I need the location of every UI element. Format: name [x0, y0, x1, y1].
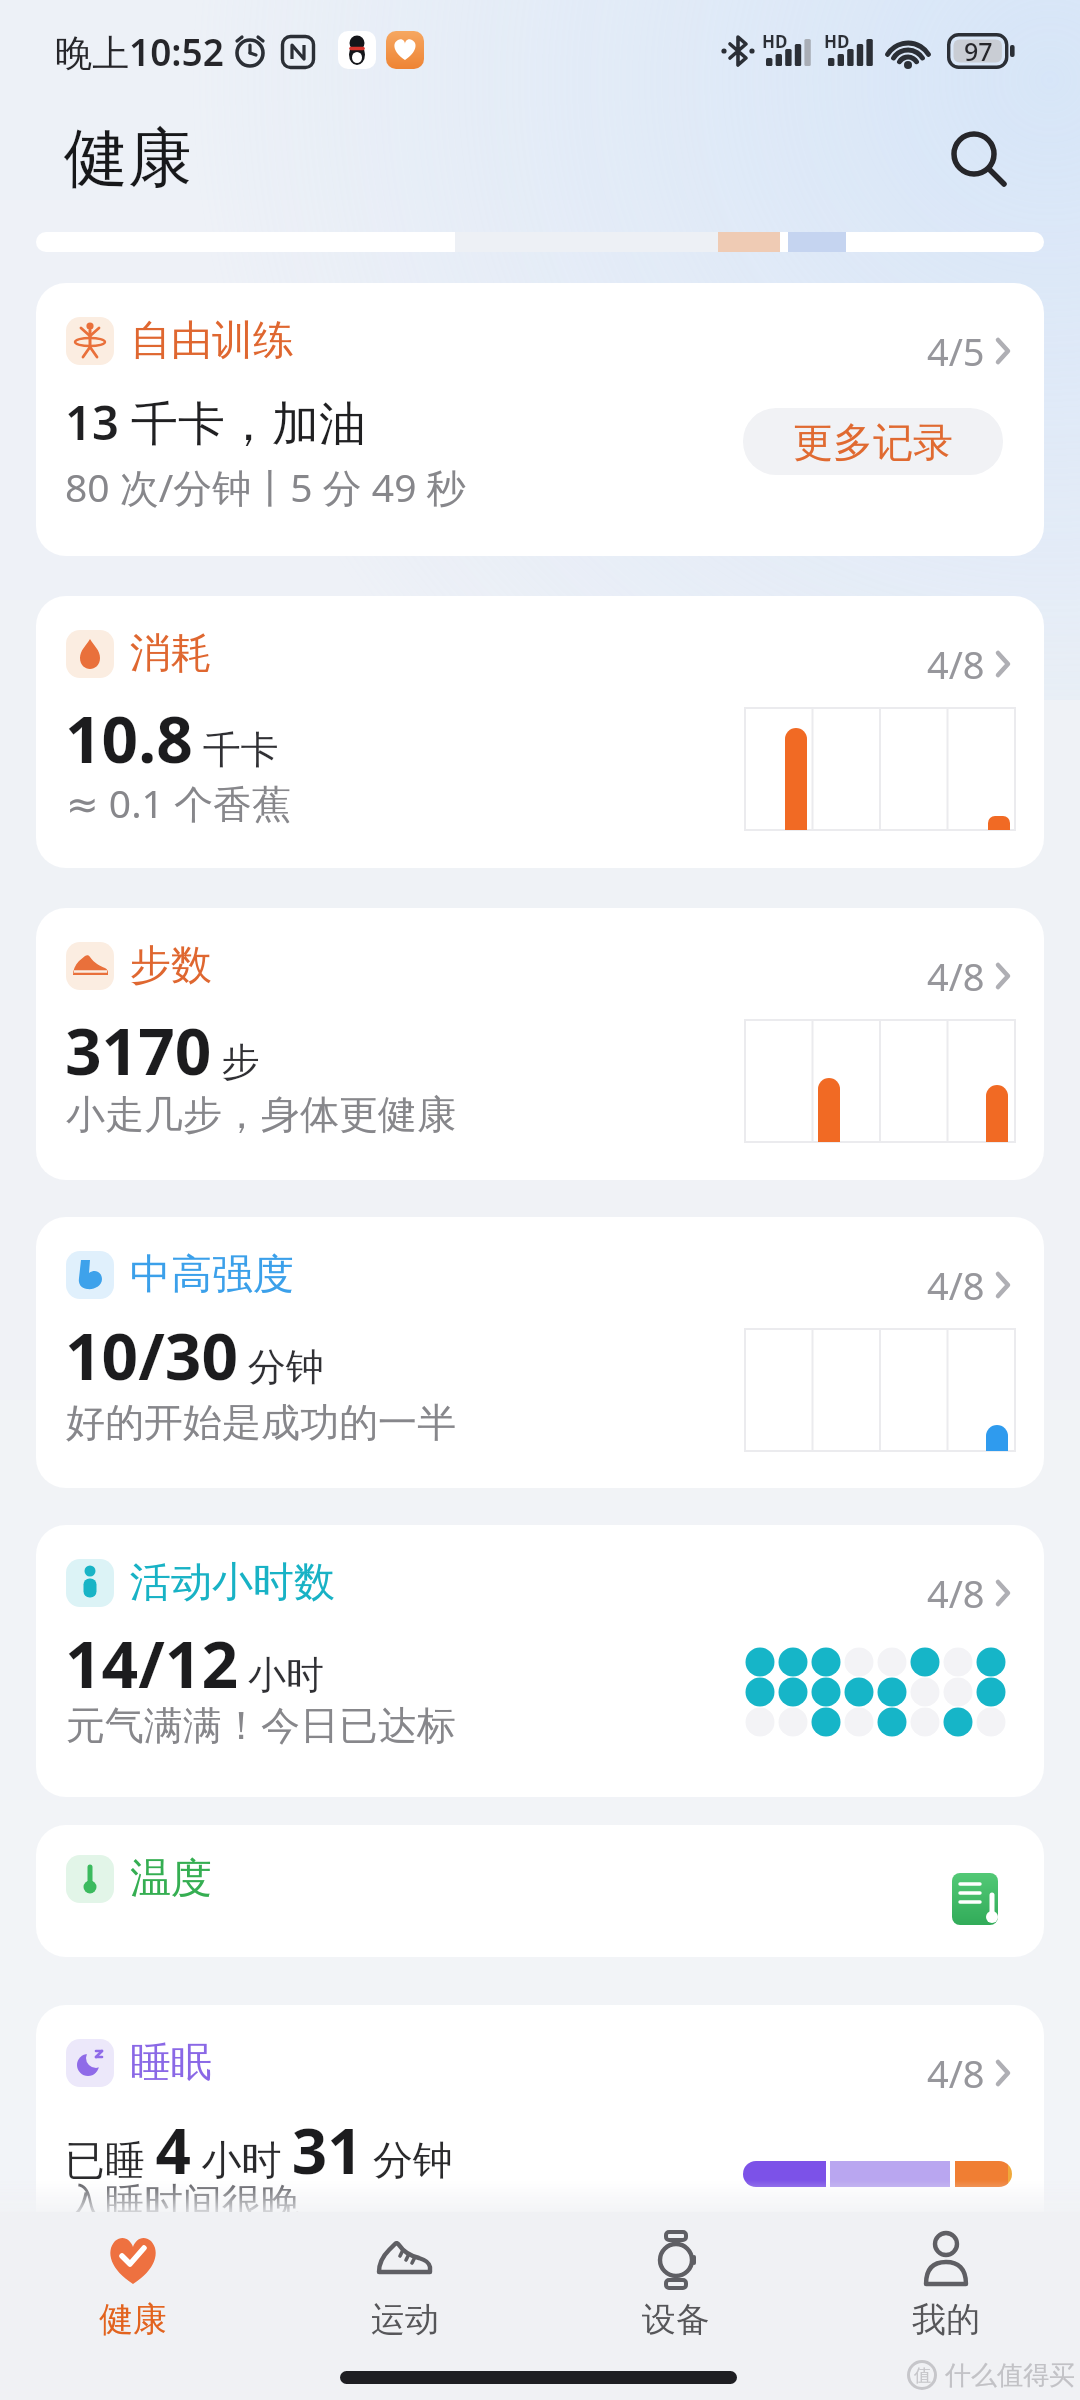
button[interactable]: 活动小时数 [36, 1525, 1044, 1797]
staticText: 10.8 千卡 [65, 695, 279, 782]
staticText: 晚上10:52 [55, 26, 224, 77]
button[interactable]: 设备 [606, 2216, 746, 2338]
button[interactable]: 消耗 [36, 596, 1044, 868]
staticText: 4/8 [927, 1259, 985, 1311]
staticText: 中高强度 [130, 1249, 294, 1301]
button[interactable]: 睡眠 [36, 2005, 1044, 2245]
staticText: 设备 [642, 2298, 710, 2341]
staticText: 温度 [130, 1853, 212, 1905]
button[interactable]: 温度 [36, 1825, 1044, 1957]
staticText: 3170 步 [65, 1007, 260, 1094]
staticText: 13 千卡，加油 [65, 390, 366, 450]
staticText: 已睡 4 小时 31 分钟 [65, 2108, 453, 2192]
staticText: HD [824, 30, 850, 53]
staticText: 4/5 [927, 325, 985, 377]
staticText: 好的开始是成功的一半 [66, 1398, 456, 1447]
staticText: 4/8 [927, 638, 985, 690]
staticText: 4/8 [927, 950, 985, 1002]
staticText: 自由训练 [130, 315, 294, 367]
staticText: HD [762, 30, 788, 53]
staticText: 我的 [912, 2298, 980, 2341]
button[interactable]: 运动 [335, 2216, 475, 2338]
staticText: 4/8 [927, 1567, 985, 1619]
button[interactable]: 步数 [36, 908, 1044, 1180]
button[interactable]: 我的 [876, 2216, 1016, 2338]
staticText: 运动 [371, 2298, 439, 2341]
staticText: 97 [964, 34, 993, 68]
staticText: 更多记录 [793, 417, 953, 467]
staticText: 10/30 分钟 [65, 1312, 324, 1399]
staticText: 活动小时数 [130, 1557, 335, 1609]
button[interactable]: 更多记录 [743, 408, 1003, 475]
staticText: 健康 [99, 2298, 167, 2341]
staticText: 80 次/分钟丨5 分 49 秒 [65, 460, 466, 513]
button[interactable]: 中高强度 [36, 1217, 1044, 1488]
staticText: 步数 [130, 940, 212, 992]
staticText: 睡眠 [130, 2037, 212, 2089]
button[interactable]: 自由训练 [36, 283, 1044, 556]
staticText: 元气满满！今日已达标 [66, 1701, 456, 1750]
staticText: 值 [914, 2365, 931, 2386]
button[interactable]: 健康 [63, 2216, 203, 2338]
staticText: ≈ 0.1 个香蕉 [66, 776, 292, 829]
staticText: 什么值得买 [945, 2359, 1075, 2392]
staticText: 消耗 [130, 628, 212, 680]
staticText: 14/12 小时 [65, 1620, 324, 1707]
staticText: 入睡时间很晚 [66, 2178, 300, 2227]
staticText: 4/8 [927, 2047, 985, 2099]
staticText: 健康 [64, 118, 192, 199]
staticText: 小走几步，身体更健康 [66, 1090, 456, 1139]
button[interactable] [946, 126, 1010, 190]
